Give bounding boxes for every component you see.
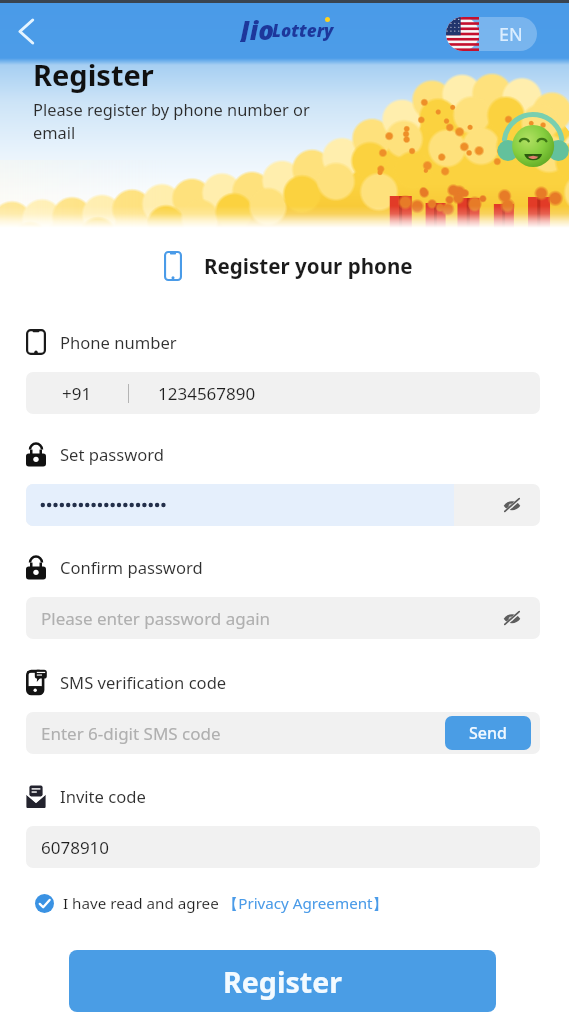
staticText: Confirm password [60,556,203,579]
staticText: 1234567890 [158,382,256,405]
button[interactable]: Language EN [446,17,537,51]
staticText: I have read and agree [63,893,223,914]
staticText: EN [499,22,523,47]
staticText: Phone number [60,331,177,354]
staticText: +91 [62,382,92,405]
staticText: Invite code [60,785,146,808]
staticText: Enter 6-digit SMS code [41,722,221,745]
staticText: 【Privacy Agreement】 [223,893,388,914]
button[interactable]: Toggle password visibility [483,597,540,639]
staticText: Please enter password again [41,607,271,630]
staticText: SMS verification code [60,671,227,694]
staticText: Register [223,962,343,1001]
button[interactable]: Enter 6-digit SMS code [26,712,540,754]
button[interactable]: Send [445,716,531,750]
button[interactable]: Toggle password visibility [483,484,540,526]
button[interactable]: +91 [26,372,540,414]
staticText: Register your phone [204,252,413,280]
staticText: Register [33,55,154,94]
button[interactable]: Toggle password visibility [26,484,540,526]
button[interactable]: 6078910 [26,826,540,868]
staticText: Jio [240,12,274,42]
button[interactable]: Back [3,9,48,54]
button[interactable]: Please enter password again [26,597,540,639]
staticText: Set password [60,443,164,466]
button[interactable]: Register [69,950,496,1012]
staticText: Send [469,722,507,744]
staticText: 6078910 [41,836,110,859]
staticText: Please register by phone number or email [33,98,310,144]
button[interactable]: I have read and agree [35,893,388,914]
staticText: Lottery [272,19,334,42]
